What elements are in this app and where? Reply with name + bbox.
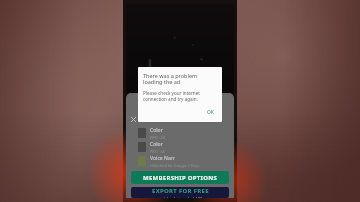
button[interactable]: Color bbox=[126, 126, 234, 140]
button[interactable]: EXPORT FOR FREE bbox=[131, 187, 229, 198]
staticText: Color bbox=[150, 127, 163, 134]
staticText: watch ads to unlock HD bbox=[158, 196, 203, 198]
staticText: Please check your internet connection an… bbox=[143, 90, 217, 102]
staticText: PRO · 4K bbox=[150, 149, 166, 154]
button[interactable]: Close bbox=[129, 115, 138, 124]
staticText: Color bbox=[150, 141, 163, 148]
staticText: PRO · 4K bbox=[150, 135, 166, 140]
button[interactable]: OK bbox=[204, 108, 217, 117]
staticText: OK bbox=[207, 109, 214, 116]
button[interactable]: Color bbox=[126, 140, 234, 154]
staticText: Unlocked for Google 7 Days bbox=[150, 163, 200, 168]
staticText: Voice Narr bbox=[150, 155, 175, 162]
button[interactable]: MEMBERSHIP OPTIONS bbox=[131, 171, 229, 184]
staticText: MEMBERSHIP OPTIONS bbox=[143, 174, 218, 182]
staticText: There was a problem loading the ad bbox=[143, 72, 217, 86]
button[interactable]: Voice Narr bbox=[126, 154, 234, 168]
staticText: EXPORT FOR FREE bbox=[152, 187, 209, 195]
